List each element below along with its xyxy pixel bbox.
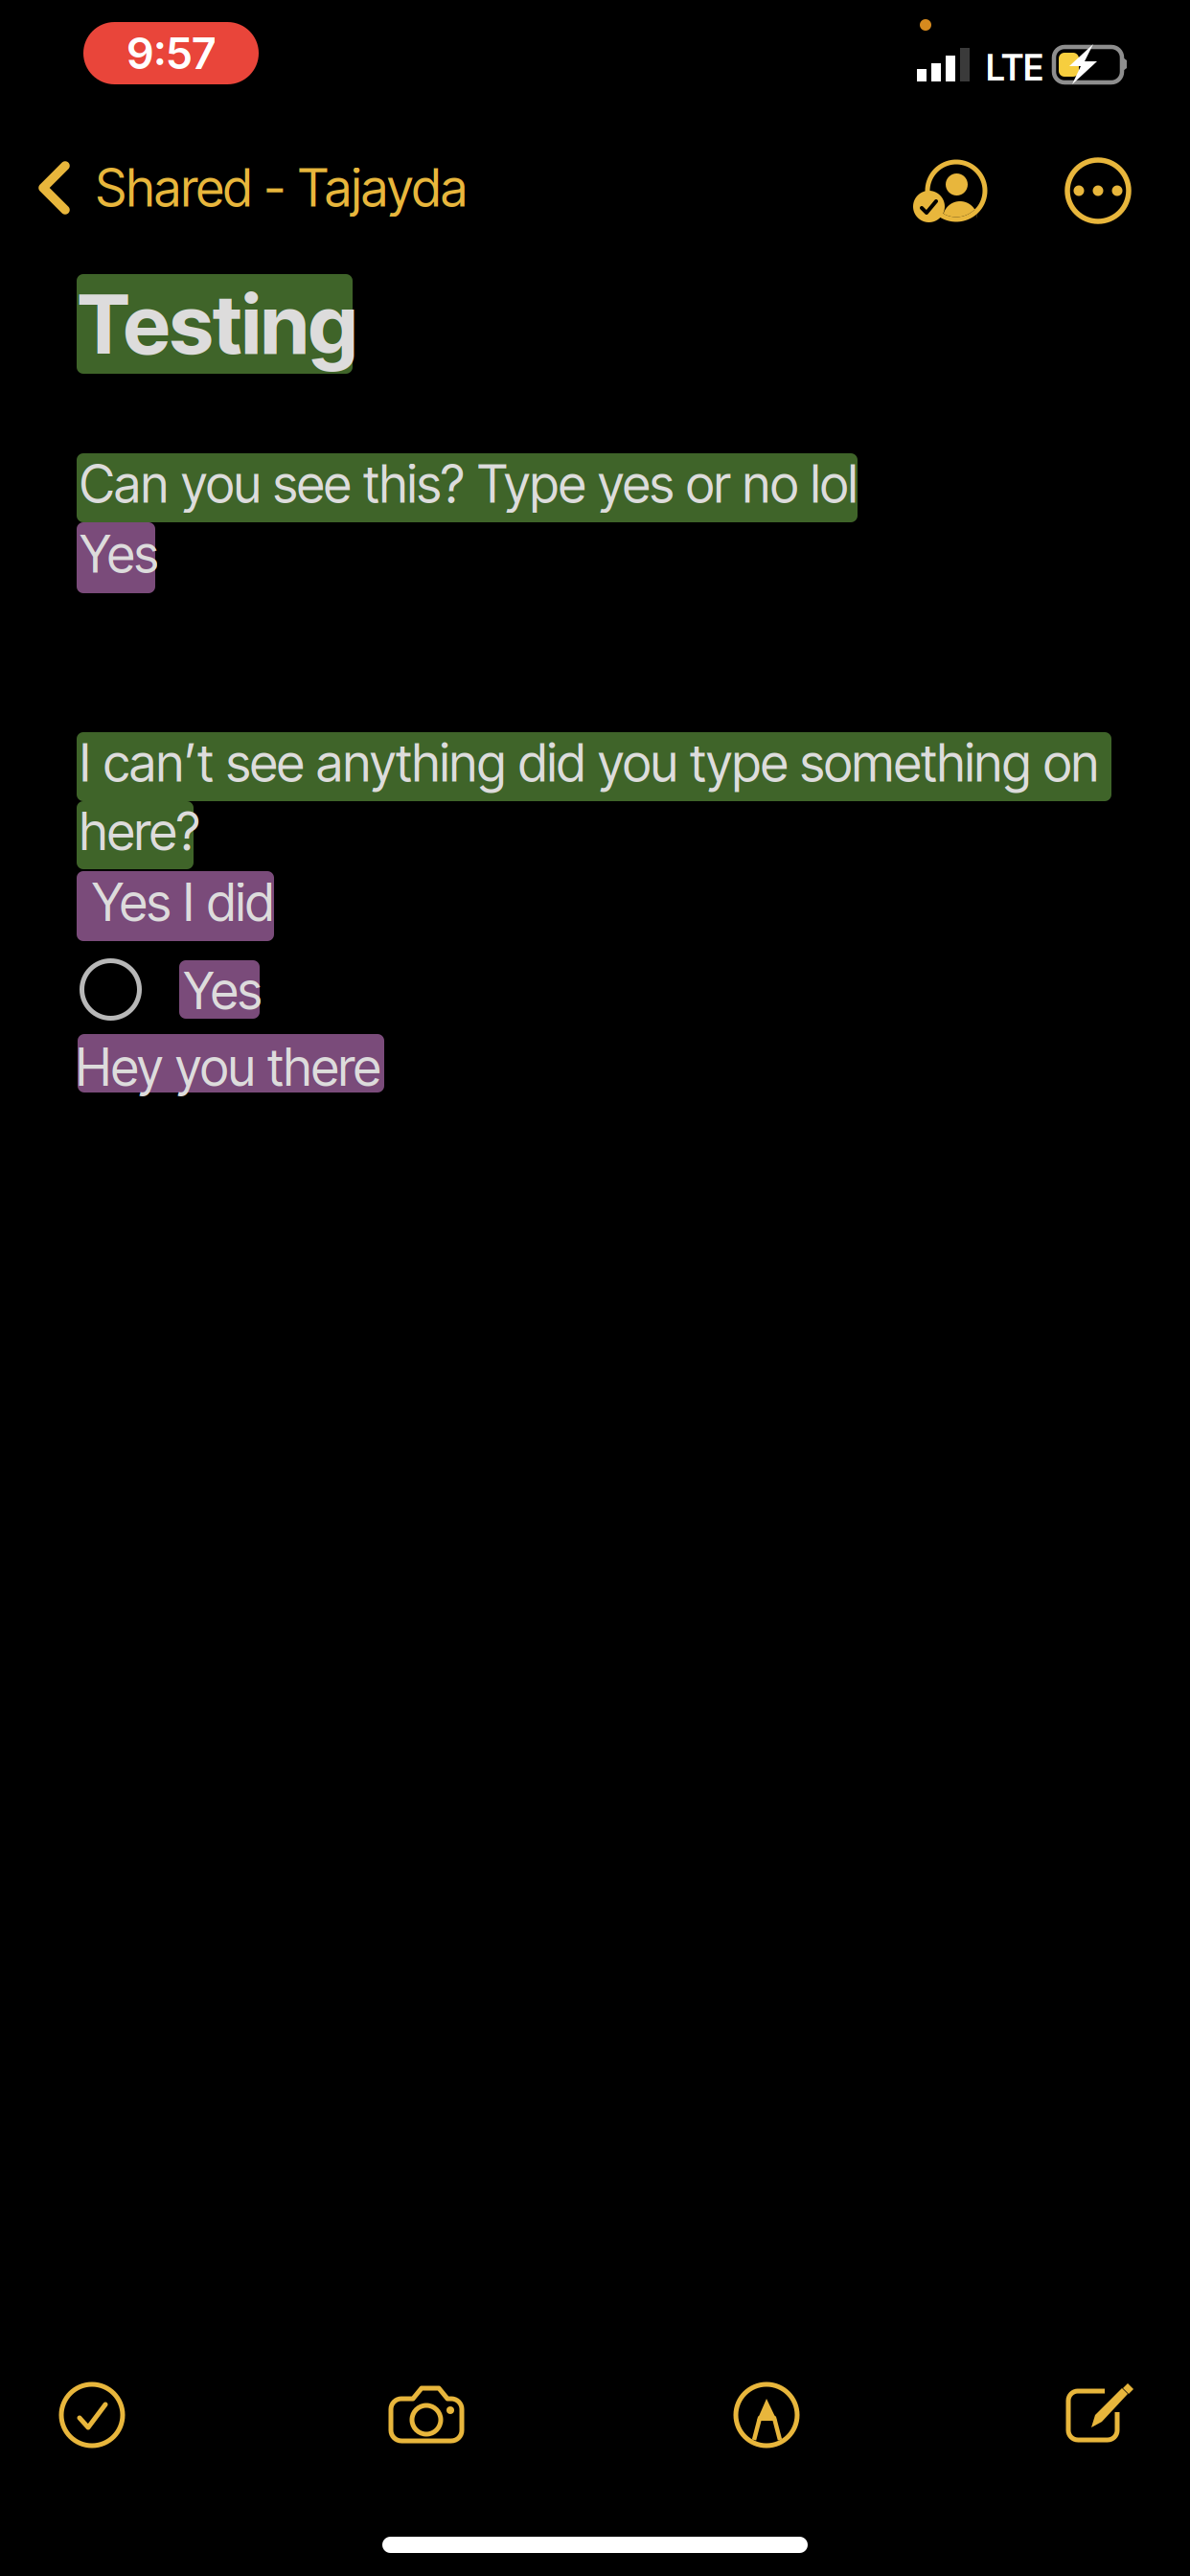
button[interactable]: Checklist [61,2384,123,2446]
staticText: Testing [78,274,357,373]
staticText: Yes [80,523,158,585]
staticText: Shared - Tajayda [96,157,468,219]
staticText: LTE [986,46,1043,89]
button[interactable]: New note [1066,2380,1144,2444]
staticText: 9:57 [127,27,215,80]
button[interactable]: Shared with people [912,159,987,222]
button[interactable]: More [1067,160,1129,221]
button[interactable]: Camera [391,2385,462,2441]
staticText: Can you see this? Type yes or no lol [80,453,858,515]
staticText: Yes [183,959,262,1021]
button[interactable]: Markup [736,2384,797,2446]
staticText: I can’t see anything did you type someth… [80,732,1099,794]
button[interactable]: Shared - Tajayda [0,142,498,234]
staticText: Yes I did [92,871,274,933]
staticText: here? [80,800,200,862]
staticText: Hey you there [76,1036,380,1098]
